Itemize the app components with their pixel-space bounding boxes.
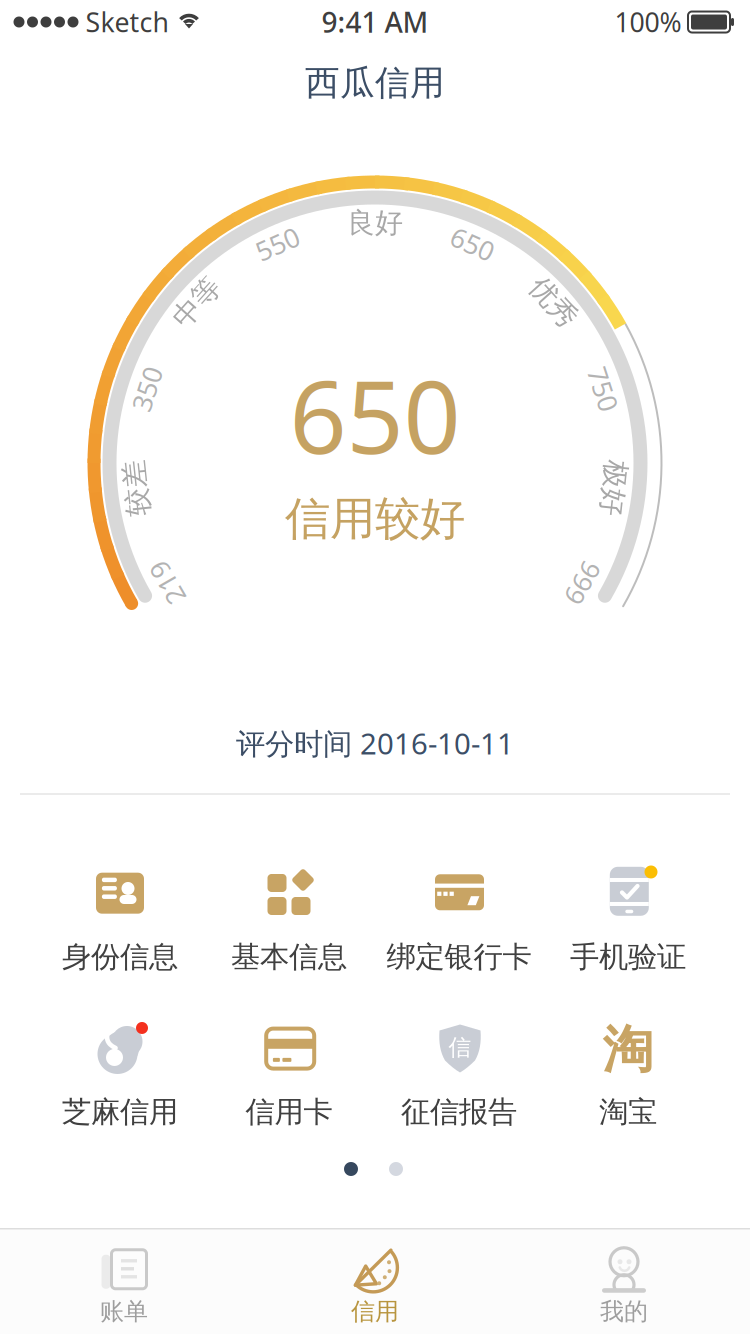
- staticText: Sketch: [85, 4, 168, 40]
- button[interactable]: 淘: [594, 1020, 662, 1130]
- button[interactable]: 手机验证: [570, 865, 686, 975]
- staticText: 手机验证: [570, 939, 686, 975]
- staticText: 9:41 AM: [321, 3, 428, 41]
- button[interactable]: 绑定银行卡: [386, 865, 531, 975]
- button[interactable]: 身份信息: [62, 865, 178, 975]
- staticText: 良好: [347, 206, 403, 240]
- staticText: 650: [289, 349, 460, 481]
- staticText: 绑定银行卡: [386, 939, 531, 975]
- staticText: 100%: [614, 4, 681, 40]
- button[interactable]: 账单: [24, 1236, 224, 1334]
- staticText: 信用: [351, 1297, 399, 1326]
- staticText: 999: [560, 565, 605, 601]
- button[interactable]: 信用卡: [245, 1020, 332, 1130]
- staticText: 信用较好: [285, 491, 465, 547]
- staticText: 西瓜信用: [305, 62, 445, 104]
- button[interactable]: 芝麻信用: [62, 1020, 178, 1130]
- staticText: 较差: [108, 471, 164, 505]
- button[interactable]: 我的: [524, 1236, 724, 1334]
- button[interactable]: 信: [401, 1020, 517, 1130]
- staticText: 750: [581, 371, 626, 406]
- staticText: 极好: [586, 471, 642, 505]
- button[interactable]: 基本信息: [231, 865, 347, 975]
- staticText: 650: [450, 226, 495, 261]
- staticText: 中等: [169, 285, 225, 320]
- button[interactable]: 信用: [275, 1236, 475, 1334]
- staticText: 信: [448, 1034, 471, 1061]
- staticText: 信用卡: [245, 1094, 332, 1130]
- staticText: 219: [145, 565, 190, 601]
- staticText: 评分时间 2016-10-11: [236, 723, 514, 762]
- staticText: 550: [255, 226, 300, 261]
- staticText: 我的: [600, 1297, 648, 1326]
- staticText: 账单: [100, 1297, 148, 1326]
- staticText: 征信报告: [401, 1094, 517, 1130]
- staticText: 350: [124, 371, 169, 406]
- staticText: 身份信息: [62, 939, 178, 975]
- staticText: 淘宝: [599, 1094, 657, 1130]
- staticText: 淘: [602, 1019, 653, 1081]
- staticText: 优秀: [525, 285, 581, 320]
- staticText: 芝麻信用: [62, 1094, 178, 1130]
- staticText: 基本信息: [231, 939, 347, 975]
